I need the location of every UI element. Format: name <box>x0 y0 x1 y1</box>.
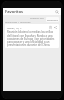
staticText: Favoritos <box>5 9 54 14</box>
button[interactable]: Search <box>54 9 59 14</box>
button[interactable]: Recientes <box>46 17 59 22</box>
staticText: Recientes <box>47 18 58 21</box>
button[interactable]: jueves, 18, 7 <box>5 24 59 48</box>
staticText: Reunión bilateral a medias las orillas d… <box>7 30 57 46</box>
button[interactable]: Bookmark <box>48 25 52 29</box>
staticText: jueves, 18, 7 <box>7 26 48 29</box>
staticText: Mostrando 1 resultado <box>5 20 31 23</box>
staticText: Ordenar por <box>30 16 44 19</box>
button[interactable]: Share <box>53 25 57 29</box>
